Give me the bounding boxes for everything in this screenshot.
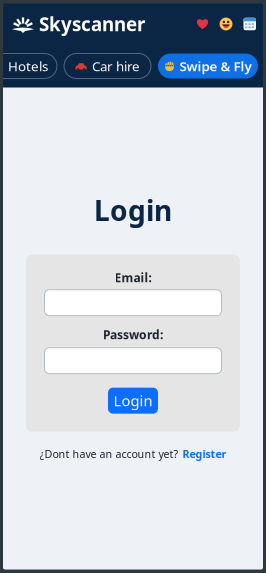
button[interactable]: Account: [219, 17, 232, 30]
staticText: Skyscanner: [39, 12, 145, 36]
button[interactable]: Menu: [243, 18, 256, 30]
staticText: Register: [182, 447, 226, 461]
button[interactable]: Favourites: [196, 18, 208, 30]
button[interactable]: Swipe & Fly: [158, 53, 258, 78]
staticText: Hotels: [8, 57, 48, 75]
button[interactable]: Hotels: [0, 53, 57, 78]
staticText: Login: [94, 191, 172, 229]
staticText: Password:: [103, 327, 163, 343]
button[interactable]: Register: [182, 447, 226, 461]
staticText: Car hire: [92, 57, 140, 75]
button[interactable]: Car hire: [64, 53, 151, 78]
staticText: ¿Dont have an account yet?: [39, 447, 178, 461]
button[interactable]: Login: [108, 388, 158, 414]
staticText: Swipe & Fly: [179, 57, 251, 75]
staticText: Login: [113, 391, 152, 410]
button[interactable]: Skyscanner: [12, 12, 145, 36]
staticText: Email:: [114, 270, 151, 286]
